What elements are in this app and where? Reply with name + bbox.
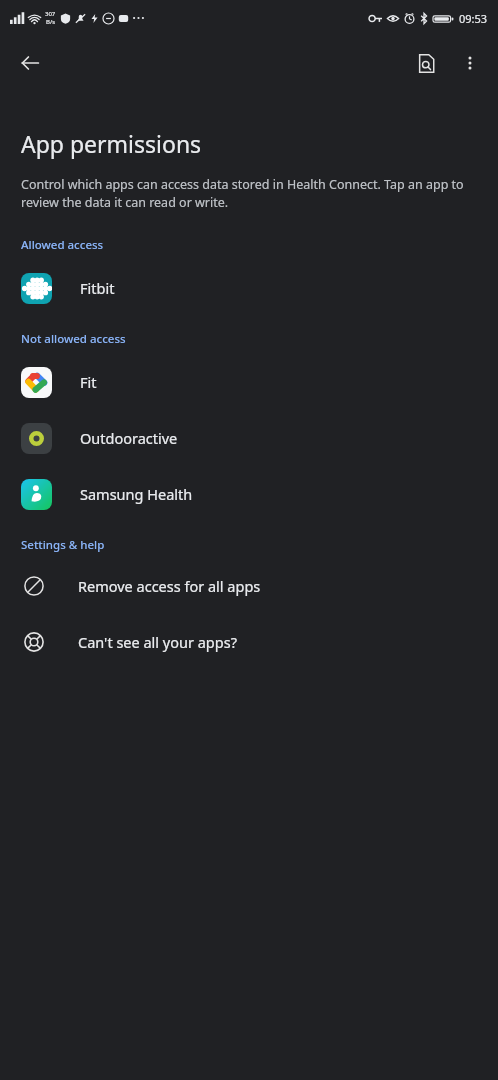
- button[interactable]: Search in page: [404, 41, 448, 85]
- staticText: B/s: [46, 18, 56, 26]
- staticText: Allowed access: [21, 237, 104, 253]
- staticText: 09:53: [459, 11, 488, 26]
- button[interactable]: Outdooractive: [0, 417, 498, 459]
- staticText: Remove access for all apps: [78, 576, 261, 596]
- button[interactable]: More options: [448, 41, 492, 85]
- staticText: App permissions: [21, 128, 202, 159]
- button[interactable]: Can't see all your apps?: [0, 625, 498, 659]
- staticText: Control which apps can access data store…: [21, 176, 482, 211]
- button[interactable]: Back: [8, 41, 52, 85]
- staticText: 307: [45, 10, 56, 18]
- button[interactable]: Fitbit: [0, 267, 498, 309]
- button[interactable]: Samsung Health: [0, 473, 498, 515]
- staticText: Can't see all your apps?: [78, 632, 237, 652]
- staticText: Settings & help: [21, 537, 105, 553]
- staticText: Not allowed access: [21, 331, 126, 347]
- staticText: Fit: [80, 372, 97, 392]
- button[interactable]: Remove access for all apps: [0, 569, 498, 603]
- button[interactable]: Fit: [0, 361, 498, 403]
- staticText: Samsung Health: [80, 484, 193, 504]
- staticText: Fitbit: [80, 278, 115, 298]
- staticText: Outdooractive: [80, 428, 178, 448]
